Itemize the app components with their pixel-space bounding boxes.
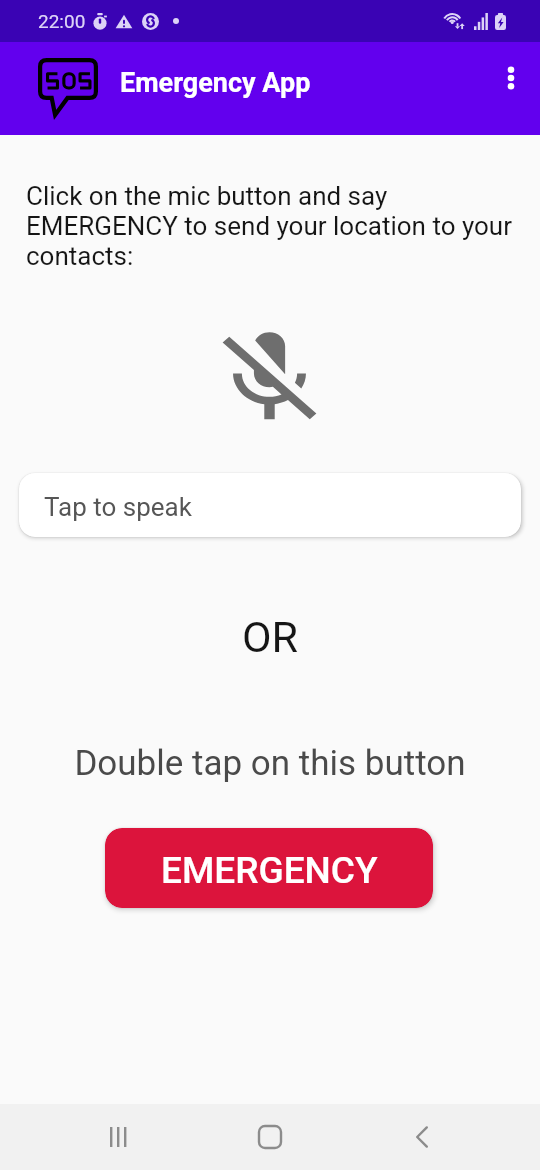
staticText: Emergency App — [120, 67, 311, 99]
button[interactable]: EMERGENCY — [105, 828, 433, 908]
staticText: Tap to speak — [44, 492, 192, 522]
staticText: 22:00 — [38, 10, 86, 32]
staticText: Click on the mic button and say EMERGENC… — [26, 181, 526, 271]
button[interactable]: Tap to speak — [19, 473, 521, 537]
staticText: OR — [0, 612, 540, 662]
button[interactable]: Home — [237, 1104, 303, 1170]
staticText: EMERGENCY — [161, 849, 378, 892]
staticText: Double tap on this button — [0, 743, 540, 784]
button[interactable]: More options — [487, 54, 535, 102]
button[interactable]: Recent apps — [86, 1104, 152, 1170]
button[interactable]: Microphone off — [207, 323, 332, 433]
button[interactable]: Back — [389, 1104, 455, 1170]
